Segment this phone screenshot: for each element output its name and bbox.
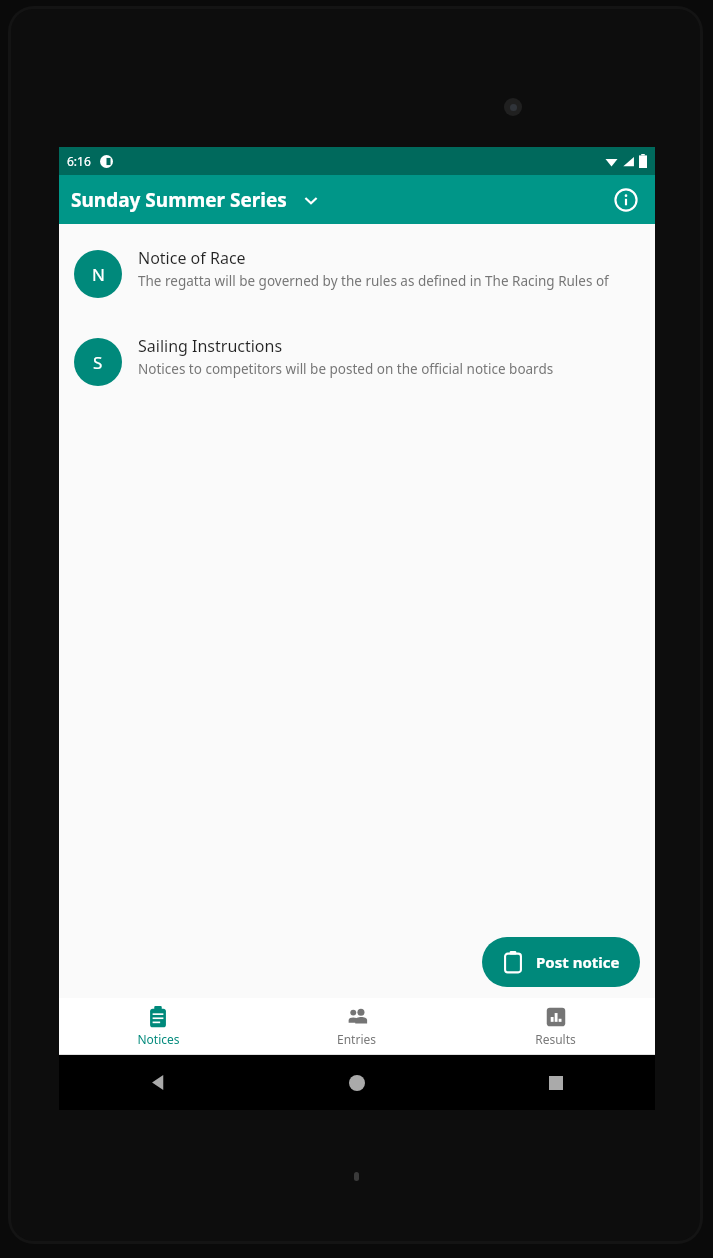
staticText: Results [535,1031,576,1047]
staticText: The regatta will be governed by the rule… [138,272,643,290]
button[interactable]: Post notice [482,937,640,987]
staticText: Sunday Summer Series [71,187,287,213]
button[interactable]: Recent apps [456,1055,655,1110]
staticText: Entries [337,1031,376,1047]
button[interactable]: Back [59,1055,257,1110]
button[interactable]: Entries [257,998,456,1055]
staticText: Notices to competitors will be posted on… [138,360,554,378]
staticText: Post notice [536,952,620,972]
button[interactable]: S [59,328,655,392]
button[interactable]: Sunday Summer Series [71,187,321,213]
staticText: Notices [137,1031,180,1047]
staticText: Sailing Instructions [138,335,283,357]
button[interactable]: N [59,240,655,304]
button[interactable]: Home [257,1055,456,1110]
staticText: Notice of Race [138,247,246,269]
button[interactable]: Notices [59,998,257,1055]
staticText: N [92,263,105,286]
button[interactable]: Results [456,998,655,1055]
staticText: 6:16 [67,153,91,169]
staticText: S [93,351,103,374]
button[interactable]: Information [605,179,647,221]
